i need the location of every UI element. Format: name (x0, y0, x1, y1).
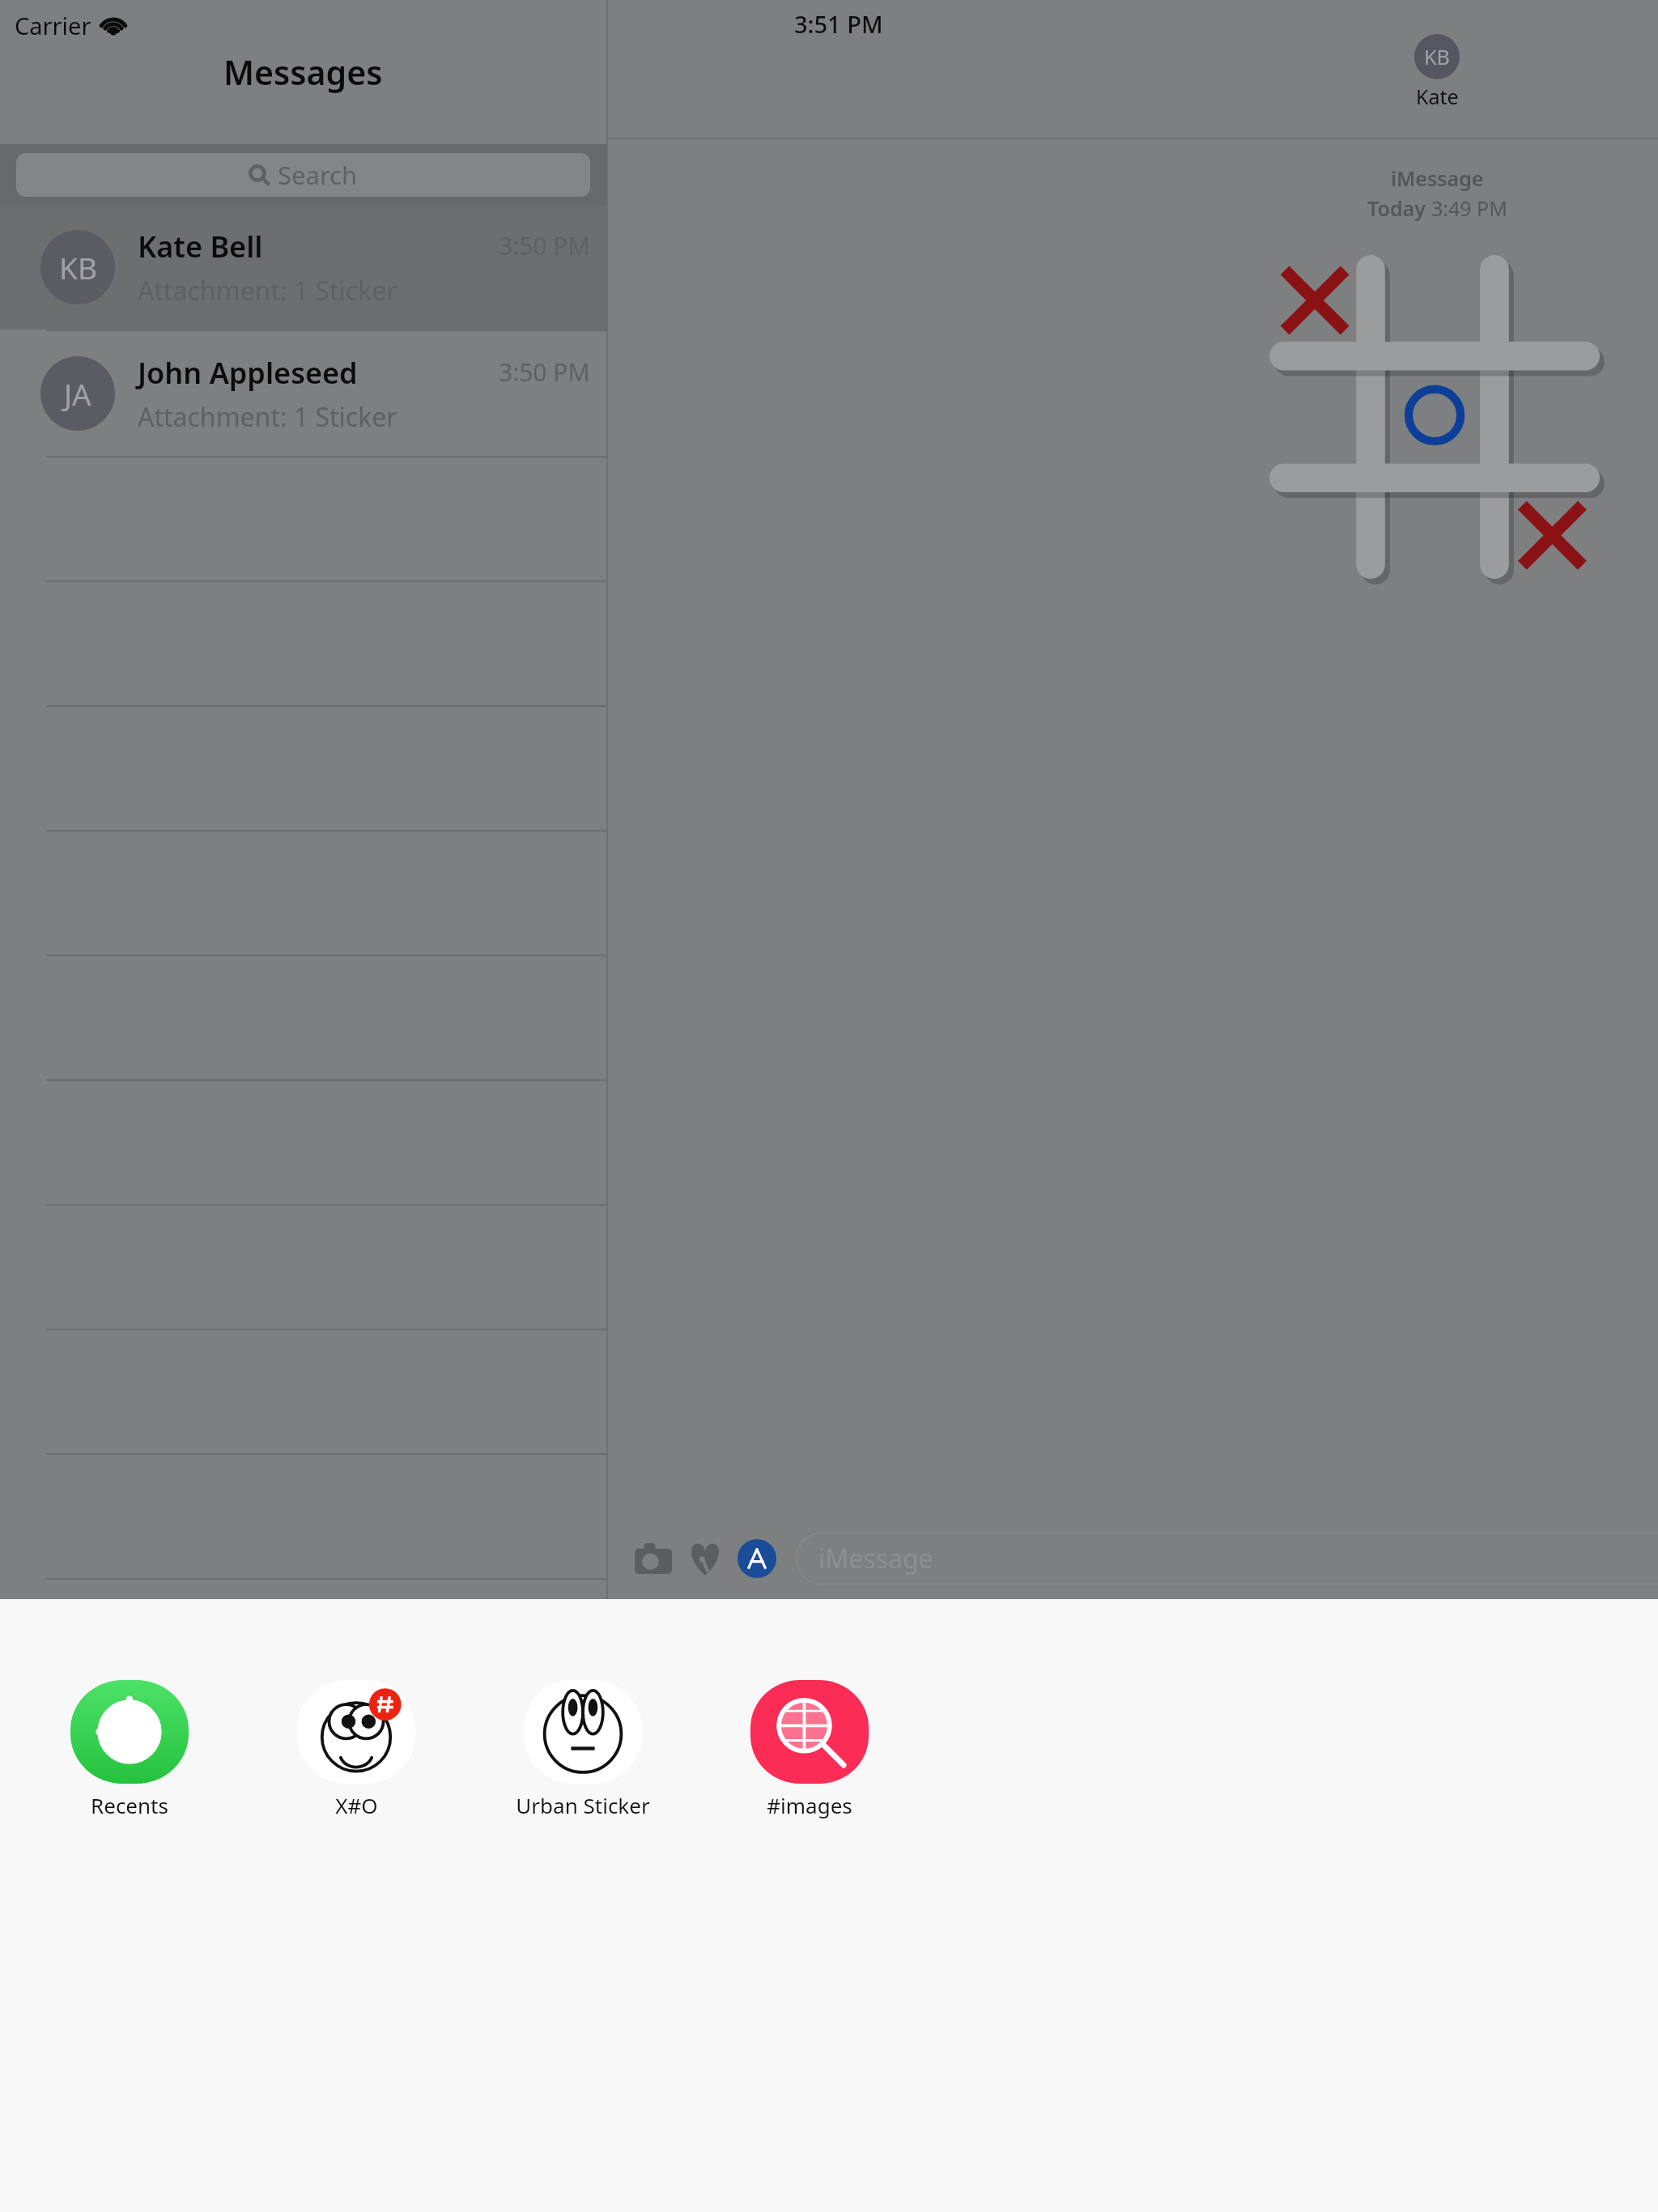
staticText: 3:49 PM (1431, 194, 1507, 222)
staticText: Urban Sticker (516, 1791, 650, 1819)
staticText: X#O (335, 1791, 378, 1819)
staticText: iMessage (1391, 164, 1484, 192)
staticText: John Appleseed (138, 353, 358, 393)
staticText: Today (1367, 194, 1431, 222)
button[interactable]: JA (0, 331, 606, 456)
staticText: JA (64, 373, 91, 414)
button[interactable]: X#O (283, 1676, 429, 1823)
staticText: #images (767, 1791, 852, 1819)
staticText: Attachment: 1 Sticker (138, 399, 397, 435)
staticText: Carrier (15, 10, 91, 41)
button[interactable]: Camera (627, 1533, 679, 1585)
button[interactable]: Urban Sticker (510, 1676, 656, 1823)
staticText: KB (59, 247, 97, 287)
staticText: Messages (223, 49, 383, 95)
staticText: Kate (1416, 83, 1459, 110)
button[interactable]: Digital Touch (679, 1533, 731, 1585)
button[interactable]: App Store (731, 1533, 783, 1585)
staticText: 3:51 PM (794, 8, 883, 40)
staticText: iMessage (818, 1541, 933, 1576)
button[interactable]: KB (1395, 32, 1479, 112)
button[interactable]: Recents (57, 1676, 202, 1823)
button[interactable]: Search (16, 153, 590, 197)
staticText: Attachment: 1 Sticker (138, 273, 397, 308)
staticText: 3:50 PM (499, 355, 590, 389)
staticText: 3:50 PM (499, 229, 590, 262)
button[interactable]: KB (0, 205, 606, 330)
button[interactable]: #images (737, 1676, 882, 1823)
staticText: Recents (91, 1791, 168, 1819)
staticText: KB (1424, 43, 1450, 70)
staticText: Kate Bell (138, 227, 263, 266)
staticText: Search (278, 158, 358, 192)
